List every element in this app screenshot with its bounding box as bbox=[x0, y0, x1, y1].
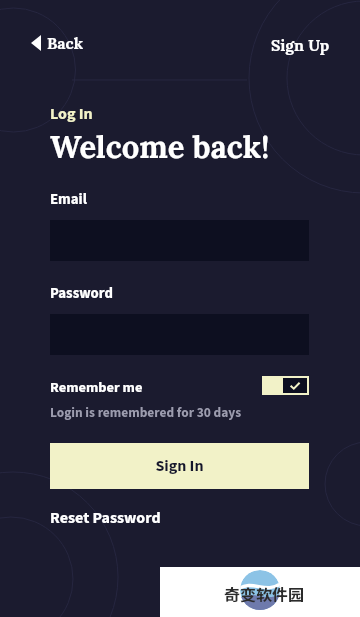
staticText: Email bbox=[50, 189, 87, 210]
staticText: 奇变软件园 bbox=[224, 582, 305, 605]
button[interactable]: Reset Password bbox=[50, 505, 161, 532]
staticText: Login is remembered for 30 days bbox=[50, 403, 242, 422]
button[interactable]: Remember me bbox=[262, 376, 309, 395]
staticText: Reset Password bbox=[50, 507, 161, 530]
button[interactable]: Sign Up bbox=[267, 30, 334, 60]
staticText: Back bbox=[47, 33, 84, 53]
staticText: Sign Up bbox=[271, 35, 330, 55]
staticText: Remember me bbox=[50, 377, 143, 398]
button[interactable]: Back bbox=[27, 28, 88, 58]
staticText: Password bbox=[50, 283, 114, 304]
button[interactable]: Sign In bbox=[50, 443, 309, 489]
staticText: Log In bbox=[50, 103, 93, 126]
staticText: Sign In bbox=[155, 455, 204, 478]
staticText: Welcome back! bbox=[50, 127, 270, 167]
